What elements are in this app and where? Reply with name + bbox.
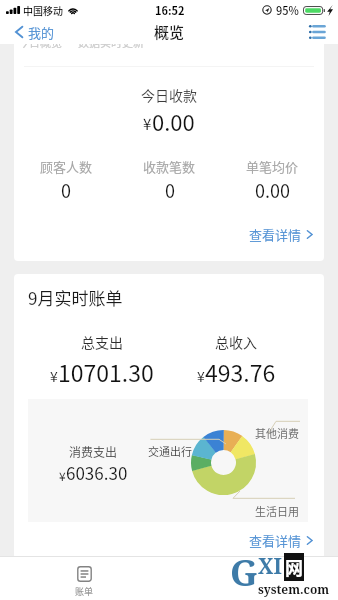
- button[interactable]: 我的: [0, 20, 61, 44]
- staticText: 账单: [75, 585, 94, 598]
- staticText: ¥: [59, 467, 66, 484]
- button[interactable]: Menu list: [301, 21, 338, 43]
- staticText: 我的: [28, 23, 55, 41]
- staticText: 16:52: [155, 2, 185, 18]
- staticText: 生活日用: [255, 503, 299, 519]
- staticText: system.com: [258, 581, 330, 597]
- staticText: 0: [61, 177, 71, 203]
- staticText: 10701.30: [58, 355, 154, 388]
- staticText: XI: [258, 552, 282, 581]
- staticText: 中国移动: [23, 3, 63, 17]
- button[interactable]: 查看详情: [231, 525, 324, 556]
- staticText: G: [230, 548, 258, 597]
- staticText: 总收入: [215, 332, 257, 352]
- button[interactable]: 账单: [69, 565, 100, 599]
- staticText: 收款笔数: [143, 157, 196, 176]
- staticText: 9月实时账单: [28, 285, 123, 310]
- staticText: 交通出行: [148, 443, 192, 459]
- staticText: 493.76: [205, 355, 276, 388]
- staticText: 6036.30: [66, 460, 128, 485]
- staticText: 概览: [154, 21, 185, 43]
- staticText: 95%: [276, 2, 299, 18]
- staticText: 网: [285, 554, 303, 580]
- staticText: ¥: [50, 366, 58, 386]
- button[interactable]: 查看详情: [231, 219, 324, 250]
- staticText: 顾客人数: [40, 157, 93, 176]
- staticText: 总支出: [81, 332, 123, 352]
- staticText: 单笔均价: [246, 157, 299, 176]
- staticText: 0.00: [152, 105, 195, 137]
- staticText: 今日收款: [14, 85, 324, 105]
- staticText: ¥: [197, 366, 205, 386]
- staticText: 查看详情: [249, 225, 302, 244]
- staticText: ¥: [143, 113, 152, 135]
- staticText: 消费支出: [69, 443, 118, 460]
- staticText: 今日概览 · 数据实时更新: [18, 40, 144, 50]
- staticText: 查看详情: [249, 531, 302, 550]
- staticText: 0: [165, 177, 175, 203]
- staticText: 其他消费: [255, 425, 299, 441]
- staticText: 0.00: [255, 177, 290, 203]
